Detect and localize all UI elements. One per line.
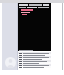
button[interactable]: Row 7 (18, 64, 51, 66)
button[interactable]: Navigation rail (2, 3, 18, 75)
button[interactable]: Content (18, 3, 51, 51)
button[interactable]: Row 1 (18, 52, 51, 54)
button[interactable]: Row 5 (18, 60, 51, 62)
button[interactable]: Row 4 (18, 58, 51, 60)
button[interactable]: Profile (5, 57, 16, 68)
button[interactable]: Row 8 (18, 66, 51, 68)
button[interactable]: Row 2 (18, 54, 51, 56)
button[interactable]: Row 6 (18, 62, 51, 64)
button[interactable]: Scrollbar (62, 3, 63, 75)
button[interactable]: Row 3 (18, 56, 51, 58)
